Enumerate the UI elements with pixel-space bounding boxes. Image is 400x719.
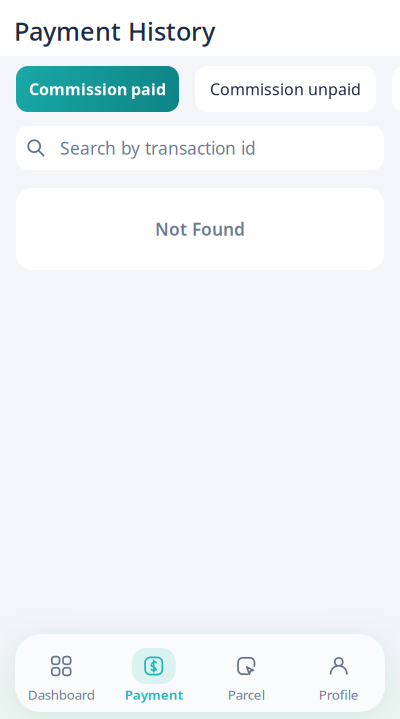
button[interactable]: Other xyxy=(392,66,400,112)
button[interactable]: Dashboard xyxy=(15,648,107,701)
staticText: Commission paid xyxy=(29,78,166,100)
button[interactable]: Parcel xyxy=(200,648,292,701)
staticText: Dashboard xyxy=(28,686,95,703)
staticText: Profile xyxy=(319,686,359,703)
button[interactable]: Profile xyxy=(292,648,385,701)
staticText: Search by transaction id xyxy=(60,136,256,159)
staticText: Parcel xyxy=(228,686,265,703)
staticText: Commission unpaid xyxy=(210,78,361,100)
staticText: Not Found xyxy=(155,217,245,240)
button[interactable]: Search by transaction id xyxy=(16,126,384,170)
button[interactable]: Commission paid xyxy=(16,66,179,112)
button[interactable]: Commission unpaid xyxy=(195,66,376,112)
staticText: Payment xyxy=(125,686,183,703)
button[interactable]: Payment xyxy=(107,648,200,701)
staticText: Payment History xyxy=(14,14,215,48)
